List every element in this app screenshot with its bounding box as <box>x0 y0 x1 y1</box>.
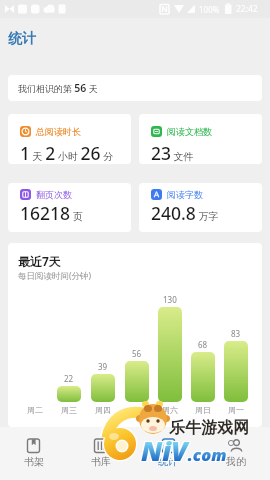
button[interactable]: 阅读文档数 <box>139 114 262 164</box>
staticText: 240.8 万字 <box>151 201 219 225</box>
staticText: 乐牛游戏网 <box>169 418 249 438</box>
staticText: 68 <box>198 339 208 350</box>
button[interactable]: 我的 <box>202 427 270 480</box>
staticText: 周六 <box>162 405 178 415</box>
staticText: 56 <box>132 348 142 359</box>
staticText: 每日阅读时间(分钟) <box>18 270 92 282</box>
staticText: NiV.com <box>141 433 227 470</box>
staticText: 周五 <box>129 405 145 415</box>
staticText: 总阅读时长 <box>36 126 81 137</box>
staticText: 阅读文档数 <box>167 126 212 137</box>
button[interactable]: 书架 <box>0 427 67 480</box>
staticText: 统计 <box>158 455 178 468</box>
button[interactable]: 我们相识的第 56 天 <box>8 75 262 101</box>
staticText: 最近7天 <box>18 253 61 269</box>
staticText: 阅读字数 <box>167 189 203 200</box>
staticText: 22 <box>64 373 74 384</box>
staticText: NiV.com <box>142 433 228 470</box>
staticText: 我的 <box>226 455 246 468</box>
staticText: 130 <box>163 294 177 305</box>
staticText: 我们相识的第 56 天 <box>18 81 98 95</box>
staticText: 书架 <box>24 455 44 468</box>
staticText: NiV.com <box>140 433 226 470</box>
staticText: 统计 <box>8 30 36 48</box>
staticText: 16218 页 <box>20 201 83 225</box>
button[interactable]: 统计 <box>134 427 202 480</box>
staticText: NiV.com <box>142 432 228 469</box>
staticText: NiV.com <box>140 432 226 469</box>
staticText: 书库 <box>91 455 111 468</box>
staticText: 周三 <box>61 405 77 415</box>
staticText: 39 <box>98 361 108 372</box>
staticText: 周二 <box>27 405 43 415</box>
staticText: 周四 <box>95 405 111 415</box>
button[interactable]: 总阅读时长 <box>8 114 131 164</box>
staticText: 周一 <box>228 405 244 415</box>
button[interactable]: 阅读字数 <box>139 183 262 232</box>
staticText: 翻页次数 <box>36 189 72 200</box>
staticText: 83 <box>231 328 241 339</box>
staticText: 周日 <box>195 405 211 415</box>
staticText: NiV.com <box>140 431 226 468</box>
staticText: 100% <box>199 4 220 15</box>
staticText: 1 天 2 小时 26 分 <box>20 141 114 164</box>
button[interactable]: 书库 <box>67 427 134 480</box>
button[interactable]: 最近7天 <box>8 243 262 427</box>
staticText: 23 文件 <box>151 141 194 164</box>
staticText: 22:42 <box>236 3 258 15</box>
staticText: NiV.com <box>141 431 227 468</box>
staticText: NiV.com <box>141 432 227 469</box>
button[interactable]: 翻页次数 <box>8 183 131 232</box>
staticText: NiV.com <box>142 431 228 468</box>
